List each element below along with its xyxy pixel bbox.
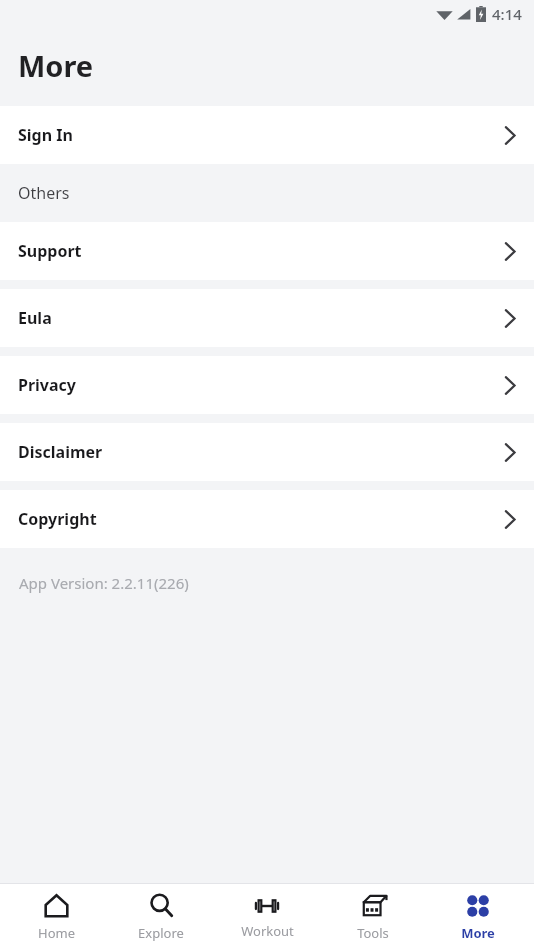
staticText: Copyright [18,508,97,530]
other: Workout [252,895,282,917]
other: Explore [148,892,175,919]
button[interactable]: Disclaimer [0,423,534,481]
button[interactable]: Explore [111,886,211,948]
button[interactable]: Home [6,886,106,948]
staticText: Tools [357,924,389,942]
staticText: App Version: 2.2.11(226) [19,573,189,593]
button[interactable]: Support [0,222,534,280]
staticText: Others [18,182,70,204]
staticText: Home [38,924,75,942]
other: More [465,893,491,919]
button[interactable]: Workout [217,889,317,946]
other: Tools [360,892,387,919]
staticText: Disclaimer [18,441,103,463]
staticText: Privacy [18,374,76,396]
staticText: Eula [18,307,52,329]
button[interactable]: More [428,887,528,948]
staticText: More [18,46,94,85]
button[interactable]: Copyright [0,490,534,548]
staticText: Support [18,240,82,262]
staticText: More [461,924,495,942]
staticText: Sign In [18,124,73,146]
button[interactable]: Eula [0,289,534,347]
staticText: Workout [241,922,294,940]
button[interactable]: Sign In [0,106,534,164]
button[interactable]: Privacy [0,356,534,414]
staticText: 4:14 [492,4,522,24]
other: Home [43,892,70,919]
button[interactable]: Tools [323,886,423,948]
staticText: Explore [138,924,184,942]
